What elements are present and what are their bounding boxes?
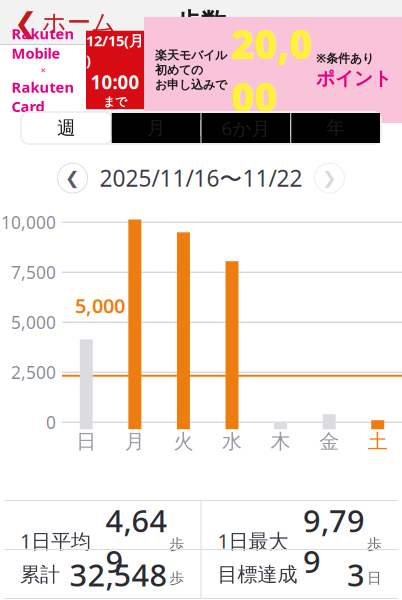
button[interactable]: Rakuten Mobile bbox=[0, 45, 402, 95]
staticText: 月 bbox=[147, 116, 166, 139]
staticText: 20,000 bbox=[231, 17, 312, 123]
staticText: × bbox=[40, 64, 45, 76]
staticText: 楽天モバイル bbox=[155, 48, 227, 63]
button[interactable]: 6か月 bbox=[201, 113, 290, 143]
staticText: 7,500 bbox=[11, 261, 56, 284]
staticText: 0 bbox=[46, 411, 56, 434]
staticText: ❯ bbox=[322, 168, 337, 188]
staticText: 月 bbox=[125, 429, 145, 454]
staticText: 9,799 bbox=[303, 500, 365, 581]
staticText: ❮ bbox=[65, 168, 80, 188]
staticText: 5,000 bbox=[75, 292, 125, 319]
staticText: 12/15(月) bbox=[86, 31, 144, 70]
staticText: 2,500 bbox=[11, 361, 56, 384]
staticText: 目標達成 bbox=[217, 562, 297, 587]
staticText: 2025/11/16〜11/22 bbox=[99, 163, 302, 193]
staticText: 累計 bbox=[20, 562, 60, 587]
button[interactable]: ❮ bbox=[0, 1, 130, 44]
staticText: ❮ bbox=[14, 7, 37, 38]
button[interactable]: 月 bbox=[112, 113, 201, 143]
staticText: 日 bbox=[76, 429, 96, 454]
button[interactable]: 年 bbox=[291, 113, 380, 143]
staticText: 歩数 bbox=[176, 7, 226, 38]
button[interactable]: 週 bbox=[22, 113, 111, 143]
staticText: 年 bbox=[326, 116, 345, 139]
staticText: 1日最大 bbox=[217, 527, 288, 554]
staticText: お申し込みで bbox=[155, 77, 227, 92]
staticText: 木 bbox=[271, 429, 291, 454]
staticText: 10,000 bbox=[1, 211, 56, 234]
button[interactable]: 次の週 bbox=[314, 163, 344, 193]
button[interactable]: 前の週 bbox=[57, 163, 87, 193]
staticText: 10:00 bbox=[90, 70, 139, 94]
staticText: 4,649 bbox=[105, 500, 167, 581]
staticText: 6か月 bbox=[221, 116, 270, 140]
staticText: 歩 bbox=[367, 535, 382, 553]
staticText: 火 bbox=[173, 429, 193, 454]
staticText: ポイント bbox=[316, 67, 392, 90]
staticText: Rakuten Mobile bbox=[11, 24, 74, 63]
staticText: 土 bbox=[368, 429, 388, 454]
staticText: 32,548 bbox=[69, 554, 167, 595]
staticText: 初めての bbox=[155, 63, 203, 77]
staticText: ホーム bbox=[42, 8, 116, 37]
staticText: 1日平均 bbox=[20, 527, 91, 554]
staticText: 3 bbox=[347, 554, 365, 595]
staticText: ※条件あり bbox=[316, 50, 374, 66]
staticText: まで bbox=[103, 94, 127, 109]
staticText: 水 bbox=[222, 429, 242, 454]
staticText: 金 bbox=[319, 429, 339, 454]
staticText: 5,000 bbox=[11, 311, 56, 334]
staticText: 歩 bbox=[169, 535, 184, 553]
staticText: Rakuten Card bbox=[11, 77, 74, 116]
staticText: 日 bbox=[367, 569, 382, 587]
staticText: 週 bbox=[57, 116, 76, 139]
staticText: 歩 bbox=[169, 569, 184, 587]
